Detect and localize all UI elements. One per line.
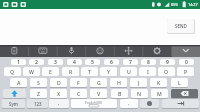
button[interactable]: A bbox=[10, 78, 27, 87]
staticText: 5 bbox=[91, 59, 94, 65]
button[interactable]: K bbox=[150, 78, 167, 87]
button[interactable]: J bbox=[130, 78, 147, 87]
staticText: Sym bbox=[9, 101, 18, 107]
button[interactable] bbox=[29, 45, 58, 57]
button[interactable]: E bbox=[42, 67, 59, 76]
button[interactable]: V bbox=[90, 89, 107, 98]
staticText: 7 bbox=[129, 59, 132, 65]
staticText: F bbox=[77, 79, 80, 86]
button[interactable] bbox=[0, 45, 29, 57]
button[interactable]: 7 bbox=[123, 59, 138, 65]
button[interactable]: O bbox=[158, 67, 175, 76]
staticText: D bbox=[57, 79, 61, 86]
button[interactable]: 123 bbox=[27, 99, 48, 108]
button[interactable]: N bbox=[131, 89, 148, 98]
staticText: , bbox=[58, 100, 60, 107]
button[interactable]: C bbox=[70, 89, 87, 98]
button[interactable]: . bbox=[120, 99, 138, 108]
button[interactable]: 9 bbox=[160, 59, 175, 65]
staticText: Q bbox=[10, 68, 15, 75]
button[interactable]: X bbox=[50, 89, 67, 98]
button[interactable]: English(UK) bbox=[71, 99, 117, 108]
staticText: P bbox=[184, 68, 188, 75]
staticText: V bbox=[97, 90, 101, 97]
staticText: 4 bbox=[73, 59, 76, 65]
button[interactable]: W bbox=[23, 67, 40, 76]
button[interactable]: H bbox=[110, 78, 127, 87]
staticText: S bbox=[37, 79, 40, 86]
staticText: H bbox=[117, 79, 121, 86]
staticText: 3 bbox=[54, 59, 57, 65]
button[interactable]: B bbox=[111, 89, 128, 98]
staticText: 0 bbox=[185, 59, 188, 65]
button[interactable] bbox=[162, 99, 199, 108]
button[interactable] bbox=[57, 45, 86, 57]
button[interactable]: S bbox=[30, 78, 47, 87]
button[interactable] bbox=[86, 45, 115, 57]
button[interactable]: P bbox=[177, 67, 194, 76]
button[interactable] bbox=[140, 99, 159, 108]
staticText: W bbox=[29, 68, 34, 75]
staticText: 2 bbox=[35, 59, 38, 65]
button[interactable]: Q bbox=[4, 67, 21, 76]
button[interactable]: 4 bbox=[67, 59, 82, 65]
button[interactable]: SEND bbox=[167, 19, 194, 33]
button[interactable]: 2 bbox=[29, 59, 44, 65]
button[interactable] bbox=[143, 45, 172, 57]
staticText: Z bbox=[37, 90, 40, 97]
staticText: 123 bbox=[34, 101, 42, 107]
button[interactable]: , bbox=[49, 99, 69, 108]
button[interactable]: 1 bbox=[11, 59, 26, 65]
button[interactable] bbox=[114, 45, 143, 57]
staticText: N bbox=[137, 90, 142, 97]
staticText: 8 bbox=[147, 59, 150, 65]
staticText: T bbox=[88, 68, 91, 75]
button[interactable]: L bbox=[171, 78, 188, 87]
button[interactable]: R bbox=[62, 67, 79, 76]
button[interactable] bbox=[171, 89, 198, 98]
button[interactable]: 5 bbox=[85, 59, 100, 65]
staticText: X bbox=[57, 90, 61, 97]
button[interactable] bbox=[172, 45, 200, 57]
button[interactable]: G bbox=[90, 78, 107, 87]
button[interactable]: D bbox=[50, 78, 67, 87]
staticText: G bbox=[97, 79, 101, 86]
staticText: I bbox=[147, 68, 149, 75]
button[interactable]: Sym bbox=[2, 99, 25, 108]
button[interactable]: F bbox=[70, 78, 87, 87]
button[interactable]: T bbox=[81, 67, 98, 76]
staticText: SEND bbox=[175, 23, 187, 29]
staticText: 6 bbox=[110, 59, 113, 65]
button[interactable]: I bbox=[139, 67, 156, 76]
staticText: 14:27 bbox=[188, 2, 198, 7]
staticText: 85% bbox=[171, 2, 179, 7]
button[interactable]: Z bbox=[30, 89, 47, 98]
staticText: L bbox=[178, 79, 181, 86]
button[interactable] bbox=[3, 89, 26, 98]
button[interactable]: Y bbox=[100, 67, 117, 76]
staticText: E bbox=[49, 68, 52, 75]
button[interactable]: 8 bbox=[141, 59, 156, 65]
staticText: . bbox=[128, 100, 130, 107]
staticText: Y bbox=[107, 68, 111, 75]
staticText: 9 bbox=[166, 59, 169, 65]
button[interactable]: 6 bbox=[104, 59, 119, 65]
staticText: English(UK) bbox=[85, 101, 103, 105]
staticText: J bbox=[138, 79, 140, 86]
staticText: K bbox=[157, 79, 161, 86]
button[interactable]: M bbox=[151, 89, 168, 98]
staticText: B bbox=[118, 90, 122, 97]
button[interactable]: 3 bbox=[48, 59, 63, 65]
staticText: C bbox=[77, 90, 81, 97]
staticText: M bbox=[157, 90, 162, 97]
staticText: O bbox=[164, 68, 169, 75]
staticText: U bbox=[127, 68, 131, 75]
staticText: A bbox=[17, 79, 21, 86]
button[interactable]: U bbox=[120, 67, 137, 76]
button[interactable]: 0 bbox=[179, 59, 194, 65]
staticText: 1 bbox=[17, 59, 20, 65]
staticText: R bbox=[69, 68, 73, 75]
